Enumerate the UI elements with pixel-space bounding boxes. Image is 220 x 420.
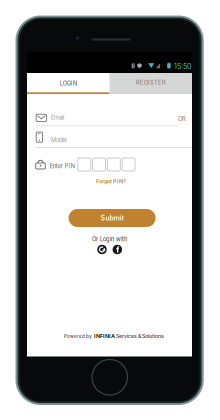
staticText: OR (178, 116, 186, 122)
staticText: Submit (101, 214, 124, 222)
staticText: REGISTER (136, 79, 166, 86)
staticText: Mobile (51, 137, 67, 143)
staticText: Or Login with (92, 236, 127, 242)
staticText: 15:50 (174, 62, 192, 71)
staticText: Enter PIN (50, 163, 75, 170)
button[interactable]: Sign in with Facebook (113, 245, 122, 254)
button[interactable]: Submit (69, 209, 156, 227)
button[interactable]: Forgot PIN? (96, 177, 132, 186)
button[interactable]: Sign in with Google (97, 245, 107, 254)
button[interactable]: REGISTER (109, 73, 192, 94)
staticText: LOGIN (60, 80, 77, 87)
staticText: Email (51, 114, 64, 121)
staticText: Powered by: INFINIA Services & Solutions (64, 333, 164, 339)
staticText: Forgot PIN? (96, 178, 126, 185)
button[interactable]: LOGIN (27, 73, 109, 94)
